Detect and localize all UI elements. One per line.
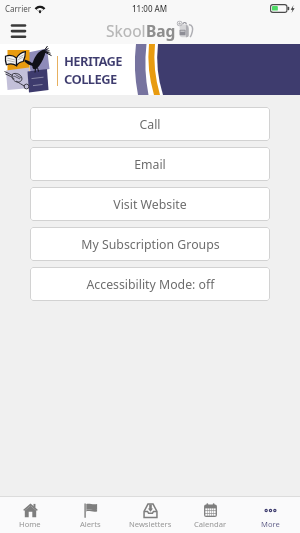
staticText: Skool [106, 20, 146, 41]
staticText: Newsletters [129, 519, 172, 529]
staticText: Bag [146, 20, 176, 41]
staticText: 11:00 AM [132, 3, 168, 14]
button[interactable]: Menu [6, 18, 30, 42]
staticText: COLLEGE [64, 70, 117, 88]
staticText: Home [19, 519, 41, 529]
staticText: Calendar [194, 519, 227, 529]
button[interactable]: Alerts [60, 497, 120, 533]
staticText: My Subscription Groups [81, 236, 220, 253]
button[interactable]: More [240, 497, 300, 533]
button[interactable]: Call [30, 107, 270, 141]
button[interactable]: Newsletters [120, 497, 180, 533]
staticText: Accessibility Mode: off [86, 276, 215, 293]
button[interactable]: My Subscription Groups [30, 227, 270, 261]
staticText: Alerts [80, 519, 101, 529]
button[interactable]: Home [0, 497, 60, 533]
staticText: Visit Website [113, 196, 187, 213]
staticText: HERITAGE [64, 52, 123, 70]
button[interactable]: Email [30, 147, 270, 181]
staticText: Email [134, 156, 166, 173]
button[interactable]: Calendar [180, 497, 240, 533]
staticText: Call [139, 116, 161, 133]
button[interactable]: Visit Website [30, 187, 270, 221]
button[interactable]: Accessibility Mode: off [30, 267, 270, 301]
staticText: More [261, 519, 280, 529]
staticText: Carrier [5, 3, 32, 14]
